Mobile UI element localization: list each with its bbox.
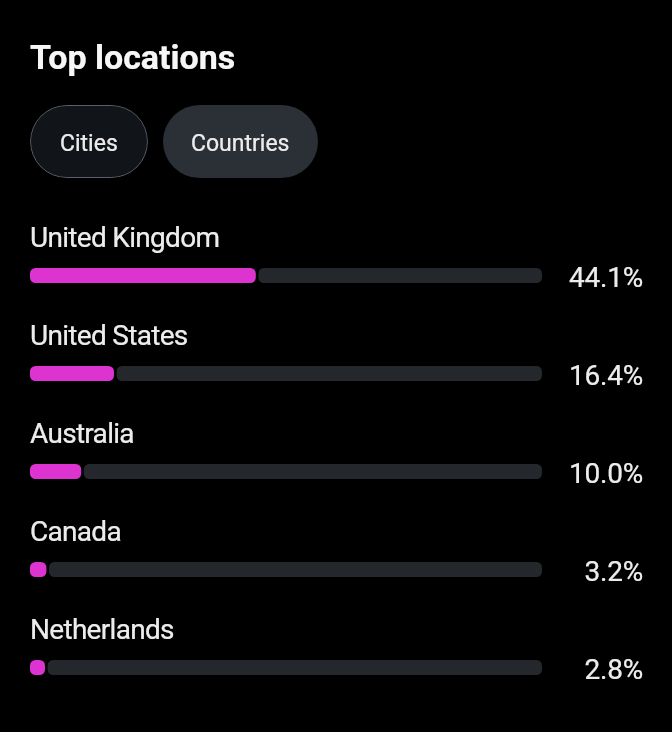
staticText: 2.8% xyxy=(584,653,643,686)
staticText: Canada xyxy=(30,515,121,548)
staticText: Countries xyxy=(191,130,290,157)
staticText: United States xyxy=(30,319,188,352)
button[interactable]: Netherlands xyxy=(30,613,672,684)
button[interactable]: United Kingdom xyxy=(30,221,672,292)
button[interactable]: United States xyxy=(30,319,672,390)
staticText: Australia xyxy=(30,417,134,450)
staticText: 16.4% xyxy=(568,359,643,392)
button[interactable]: Australia xyxy=(30,417,672,488)
staticText: United Kingdom xyxy=(30,221,220,254)
button[interactable]: Countries xyxy=(163,105,318,178)
staticText: 10.0% xyxy=(568,457,643,490)
button[interactable]: Canada xyxy=(30,515,672,586)
staticText: Netherlands xyxy=(30,613,174,646)
staticText: 44.1% xyxy=(568,261,643,294)
staticText: Top locations xyxy=(30,37,236,77)
staticText: 3.2% xyxy=(584,555,643,588)
staticText: Cities xyxy=(60,130,118,157)
button[interactable]: Cities xyxy=(30,105,148,178)
